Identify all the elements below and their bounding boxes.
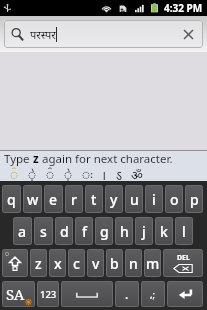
button[interactable]: t [85,185,103,213]
button[interactable]: . [115,281,139,307]
staticText: n [129,254,138,273]
staticText: s [40,222,47,241]
button[interactable]: q [2,185,21,213]
staticText: r [71,190,77,209]
staticText: b [110,254,119,273]
staticText: d [60,222,69,241]
button[interactable]: p [185,185,203,213]
button[interactable] [77,166,95,181]
staticText: m [146,254,160,273]
button[interactable]: ॐ [127,166,147,181]
staticText: u [130,190,139,209]
staticText: DEL [177,253,190,263]
staticText: t [91,190,97,209]
button[interactable]: g [95,217,113,245]
staticText: g [100,222,109,241]
button[interactable] [41,166,59,181]
button[interactable]: ,; [141,281,165,307]
staticText: i [152,190,156,209]
button[interactable]: ऽ [111,166,127,181]
staticText: h [120,222,129,241]
staticText: ,; [150,288,156,301]
button[interactable]: w [23,185,42,213]
staticText: ॐ [131,166,143,181]
button[interactable]: z [30,249,47,277]
staticText: o [170,190,179,209]
staticText: z [35,254,42,273]
staticText: again for next character. [39,151,173,166]
button[interactable]: m [144,249,161,277]
button[interactable]: Switch input method [2,281,35,307]
button[interactable]: i [145,185,163,213]
staticText: SA [6,284,25,304]
staticText: p [190,190,199,209]
staticText: c [73,254,80,273]
button[interactable]: e [44,185,63,213]
button[interactable]: l [175,217,193,245]
button[interactable]: b [106,249,123,277]
button[interactable]: Shift [2,249,28,277]
button[interactable]: d [55,217,73,245]
button[interactable]: r [65,185,83,213]
button[interactable]: v [87,249,104,277]
button[interactable]: h [115,217,133,245]
button[interactable]: o [165,185,183,213]
button[interactable]: Enter [167,281,203,307]
button[interactable]: f [75,217,93,245]
staticText: ऽ [116,166,123,181]
button[interactable] [59,166,77,181]
button[interactable]: 123 [37,281,59,307]
staticText: q [7,190,16,209]
staticText: । [101,166,106,181]
staticText: Type [4,151,33,166]
staticText: a [18,222,27,241]
button[interactable]: Search [4,22,30,46]
staticText: z [33,151,39,166]
button[interactable]: a [13,217,32,245]
staticText: परस्पर [30,27,56,42]
staticText: x [54,254,62,273]
button[interactable]: Clear query [173,21,203,47]
staticText: y [110,190,118,209]
button[interactable] [5,166,23,181]
button[interactable]: Space [61,281,113,307]
button[interactable]: j [135,217,153,245]
button[interactable]: u [125,185,143,213]
staticText: v [92,254,100,273]
staticText: j [142,222,146,241]
button[interactable]: Delete [163,249,203,277]
button[interactable]: n [125,249,142,277]
button[interactable]: c [68,249,85,277]
button[interactable]: x [49,249,66,277]
staticText: e [49,190,58,209]
button[interactable]: y [105,185,123,213]
button[interactable]: k [155,217,173,245]
staticText: k [160,222,168,241]
button[interactable] [23,166,41,181]
button[interactable]: । [95,166,111,181]
staticText: . [125,286,129,302]
button[interactable]: s [34,217,53,245]
staticText: f [82,222,87,241]
staticText: 123 [40,288,57,301]
staticText: l [182,222,186,241]
staticText: w [27,190,39,209]
staticText: 4:32 PM [164,1,203,15]
